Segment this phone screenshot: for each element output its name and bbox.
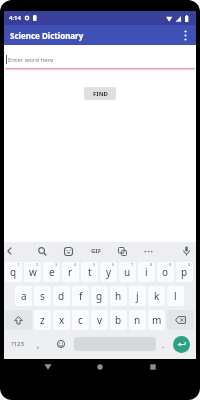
button[interactable] (180, 27, 190, 43)
staticText: p (181, 265, 188, 279)
button[interactable] (5, 68, 195, 70)
button[interactable] (42, 359, 54, 375)
button[interactable] (3, 242, 15, 260)
staticText: GIF (91, 247, 101, 255)
button[interactable] (60, 242, 76, 260)
staticText: b (115, 313, 122, 327)
button[interactable] (94, 359, 106, 375)
staticText: 4:14 (9, 14, 21, 22)
button[interactable]: ?123 (4, 332, 30, 356)
button[interactable] (140, 242, 156, 260)
button[interactable]: y (100, 262, 117, 282)
staticText: z (40, 313, 45, 327)
staticText: q (10, 265, 17, 279)
staticText: 5 (93, 262, 96, 267)
staticText: 9 (169, 262, 172, 267)
staticText: y (106, 265, 112, 279)
button[interactable]: p (176, 262, 193, 282)
staticText: 6 (112, 262, 115, 267)
button[interactable] (180, 242, 192, 260)
staticText: ?123 (11, 340, 24, 348)
staticText: t (88, 265, 92, 279)
button[interactable]: u (119, 262, 136, 282)
button[interactable]: i (138, 262, 155, 282)
button[interactable]: d (53, 286, 70, 306)
staticText: w (29, 265, 37, 279)
staticText: k (154, 289, 160, 303)
button[interactable]: k (148, 286, 165, 306)
button[interactable]: v (91, 310, 108, 330)
staticText: Enter word here (8, 56, 54, 64)
staticText: v (97, 313, 103, 327)
button[interactable]: g (91, 286, 108, 306)
button[interactable]: GIF (87, 242, 105, 260)
staticText: 2 (36, 262, 39, 267)
staticText: l (174, 289, 177, 303)
button[interactable]: , (30, 332, 46, 356)
button[interactable]: e (43, 262, 60, 282)
button[interactable]: o (157, 262, 174, 282)
staticText: m (152, 313, 162, 327)
staticText: 8 (150, 262, 153, 267)
staticText: 0 (188, 262, 191, 267)
button[interactable]: a (15, 286, 32, 306)
staticText: r (68, 265, 73, 279)
staticText: 1 (17, 262, 20, 267)
button[interactable]: f (72, 286, 89, 306)
button[interactable]: m (148, 310, 165, 330)
staticText: c (78, 313, 83, 327)
button[interactable]: z (34, 310, 51, 330)
button[interactable]: l (167, 286, 184, 306)
staticText: i (145, 265, 148, 279)
staticText: g (96, 289, 103, 303)
button[interactable] (173, 336, 190, 353)
staticText: , (37, 339, 40, 350)
button[interactable] (51, 332, 71, 356)
button[interactable]: . (155, 332, 171, 356)
button[interactable]: s (34, 286, 51, 306)
staticText: x (59, 313, 65, 327)
button[interactable] (147, 359, 159, 375)
staticText: h (115, 289, 122, 303)
button[interactable]: j (129, 286, 146, 306)
staticText: FIND (93, 90, 108, 98)
staticText: n (134, 313, 141, 327)
staticText: . (162, 339, 165, 350)
button[interactable] (34, 242, 50, 260)
staticText: 7 (131, 262, 134, 267)
staticText: f (79, 289, 83, 303)
button[interactable]: q (5, 262, 22, 282)
staticText: 3 (55, 262, 58, 267)
button[interactable]: FIND (84, 87, 116, 100)
staticText: Science Dictionary (10, 30, 84, 41)
staticText: 4 (74, 262, 77, 267)
staticText: a (21, 289, 27, 303)
staticText: o (162, 265, 169, 279)
button[interactable]: h (110, 286, 127, 306)
button[interactable]: t (81, 262, 98, 282)
button[interactable]: w (24, 262, 41, 282)
staticText: j (136, 289, 139, 303)
staticText: e (49, 265, 55, 279)
button[interactable]: b (110, 310, 127, 330)
staticText: u (124, 265, 131, 279)
button[interactable]: n (129, 310, 146, 330)
button[interactable] (5, 310, 32, 330)
button[interactable] (114, 242, 130, 260)
button[interactable]: x (53, 310, 70, 330)
staticText: s (40, 289, 45, 303)
button[interactable] (167, 310, 194, 330)
button[interactable]: c (72, 310, 89, 330)
staticText: d (58, 289, 65, 303)
button[interactable]: r (62, 262, 79, 282)
